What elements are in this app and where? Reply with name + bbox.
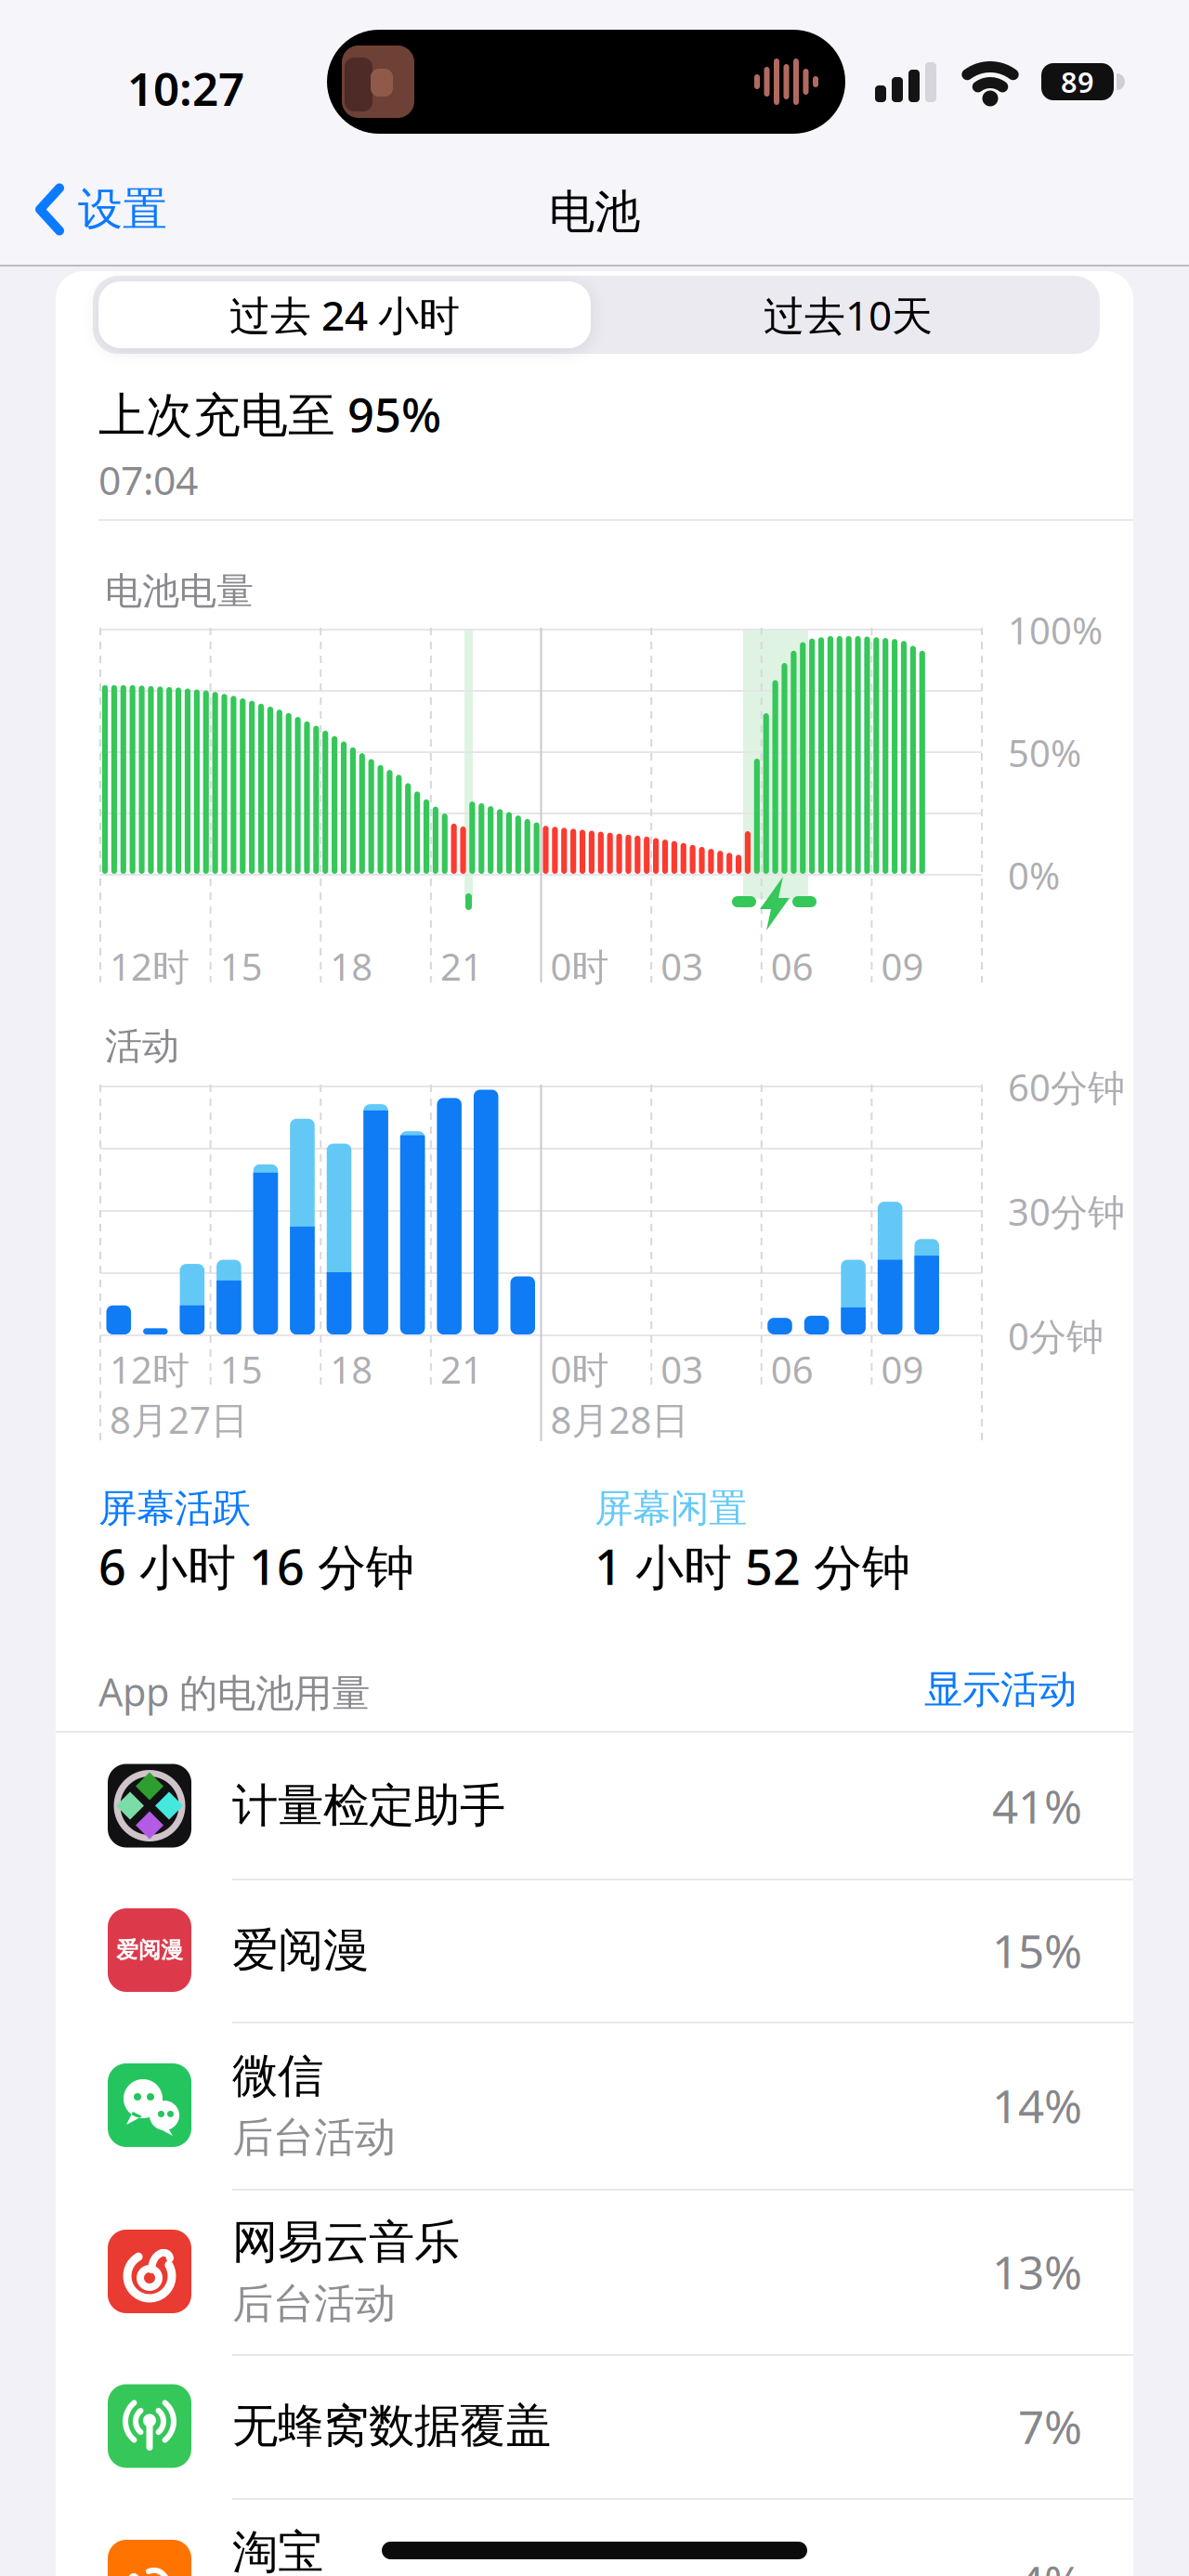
staticText: 0时	[550, 1345, 609, 1394]
staticText: 0%	[1008, 851, 1060, 900]
staticText: 18	[330, 1345, 373, 1394]
staticText: 后台活动	[232, 2112, 396, 2163]
staticText: 50%	[1008, 728, 1081, 777]
staticText: 0分钟	[1008, 1311, 1104, 1361]
staticText: 计量检定助手	[232, 1778, 505, 1834]
button[interactable]: 淘宝	[56, 2498, 1133, 2576]
staticText: 03	[661, 1345, 703, 1394]
staticText: 60分钟	[1008, 1062, 1125, 1112]
button[interactable]: 过去 24 小时	[93, 276, 596, 354]
staticText: 15	[220, 942, 263, 991]
staticText: 上次充电至 95%	[98, 383, 441, 445]
staticText: 6 小时 16 分钟	[98, 1534, 414, 1598]
button[interactable]: 爱阅漫	[56, 1879, 1133, 2022]
button[interactable]: 微信	[56, 2022, 1133, 2189]
staticText: 07:04	[98, 453, 198, 506]
staticText: 100%	[1008, 605, 1103, 655]
staticText: 电池电量	[105, 568, 254, 614]
staticText: 15	[220, 1345, 263, 1394]
staticText: 13%	[992, 2241, 1082, 2302]
staticText: 7%	[1018, 2396, 1082, 2456]
staticText: 后台活动	[232, 2279, 396, 2329]
staticText: 15%	[992, 1920, 1082, 1980]
staticText: 06	[771, 942, 814, 991]
staticText: 30分钟	[1008, 1187, 1125, 1236]
staticText: App 的电池用量	[98, 1666, 370, 1717]
staticText: 爱阅漫	[232, 1922, 369, 1978]
staticText: 18	[330, 942, 373, 991]
staticText: 89	[1061, 63, 1094, 101]
staticText: 8月28日	[550, 1395, 689, 1444]
staticText: 1 小时 52 分钟	[594, 1534, 910, 1598]
staticText: 淘宝	[232, 2524, 323, 2576]
staticText: 过去 24 小时	[229, 288, 460, 342]
button[interactable]: 无蜂窝数据覆盖	[56, 2354, 1133, 2498]
staticText: 爱阅漫	[116, 1936, 183, 1964]
staticText: 微信	[232, 2048, 323, 2104]
staticText: 21	[440, 942, 483, 991]
staticText: 03	[661, 942, 703, 991]
button[interactable]: 计量检定助手	[56, 1733, 1133, 1879]
staticText: 8月27日	[110, 1395, 248, 1444]
staticText: 屏幕活跃	[98, 1485, 251, 1532]
staticText: 屏幕闲置	[594, 1485, 747, 1532]
staticText: 09	[881, 1345, 924, 1394]
staticText: 电池	[549, 184, 640, 240]
staticText: 活动	[105, 1023, 179, 1069]
button[interactable]: 显示活动	[798, 1666, 1077, 1713]
staticText: 网易云音乐	[232, 2214, 460, 2270]
staticText: 41%	[992, 1775, 1082, 1836]
staticText: 4%	[1018, 2551, 1082, 2576]
button[interactable]: 返回设置	[35, 182, 167, 237]
staticText: 0时	[550, 942, 609, 991]
staticText: 09	[881, 942, 924, 991]
staticText: 06	[771, 1345, 814, 1394]
button[interactable]: 网易云音乐	[56, 2189, 1133, 2354]
staticText: 无蜂窝数据覆盖	[232, 2398, 551, 2454]
staticText: 设置	[78, 182, 167, 237]
staticText: 过去10天	[764, 288, 933, 342]
staticText: 12时	[110, 942, 189, 991]
staticText: 14%	[992, 2075, 1082, 2136]
button[interactable]: 过去10天	[596, 276, 1100, 354]
staticText: 12时	[110, 1345, 189, 1394]
staticText: 10:27	[127, 58, 244, 118]
staticText: 显示活动	[924, 1666, 1077, 1713]
staticText: 21	[440, 1345, 483, 1394]
